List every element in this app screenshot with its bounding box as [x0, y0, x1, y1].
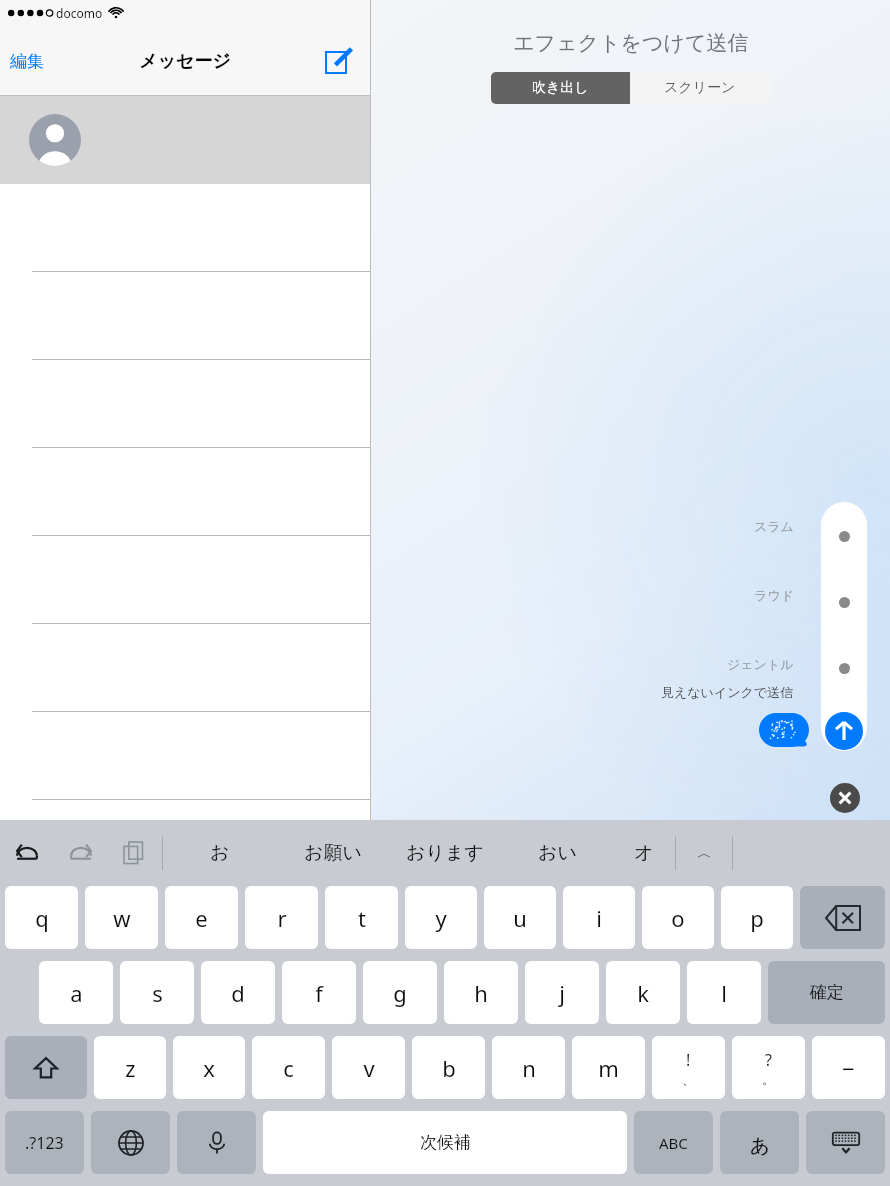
staticText: a — [70, 978, 83, 1008]
button[interactable]: Effect option — [829, 521, 859, 551]
button[interactable]: n — [492, 1036, 565, 1099]
button[interactable]: ? — [732, 1036, 805, 1099]
button[interactable]: j — [525, 961, 599, 1024]
button[interactable]: Expand — [676, 820, 732, 886]
staticText: .?123 — [25, 1132, 64, 1154]
button[interactable]: e — [165, 886, 238, 949]
button[interactable]: l — [687, 961, 761, 1024]
staticText: l — [721, 978, 727, 1008]
button[interactable]: Effect option — [829, 653, 859, 683]
button[interactable]: p — [721, 886, 793, 949]
staticText: y — [435, 903, 447, 933]
button[interactable]: z — [94, 1036, 166, 1099]
button[interactable]: おります — [389, 820, 501, 886]
button[interactable]: d — [201, 961, 275, 1024]
staticText: − — [842, 1053, 855, 1083]
button[interactable]: s — [120, 961, 194, 1024]
staticText: b — [442, 1053, 456, 1083]
button[interactable]: − — [812, 1036, 885, 1099]
staticText: 、 — [682, 1071, 695, 1087]
staticText: e — [195, 903, 208, 933]
button[interactable]: 編集 — [4, 45, 50, 78]
button[interactable]: u — [484, 886, 556, 949]
button[interactable]: g — [363, 961, 437, 1024]
staticText: 吹き出し — [532, 79, 589, 97]
staticText: ABC — [659, 1133, 688, 1153]
staticText: x — [203, 1053, 215, 1083]
button[interactable]: .?123 — [5, 1111, 84, 1174]
staticText: h — [474, 978, 488, 1008]
button[interactable]: k — [606, 961, 680, 1024]
staticText: 確定 — [810, 982, 844, 1003]
button[interactable]: お願い — [276, 820, 389, 886]
staticText: t — [358, 903, 366, 933]
button[interactable] — [0, 96, 370, 184]
staticText: i — [596, 903, 602, 933]
button[interactable]: b — [412, 1036, 485, 1099]
staticText: 見えないインクで送信 — [661, 684, 794, 700]
staticText: v — [363, 1053, 375, 1083]
button[interactable]: o — [642, 886, 714, 949]
button[interactable]: q — [5, 886, 78, 949]
button[interactable]: Paste — [108, 826, 162, 880]
button[interactable]: ぁ — [720, 1111, 799, 1174]
staticText: ラウド — [754, 587, 794, 603]
button[interactable] — [0, 536, 370, 624]
staticText: おい — [538, 841, 577, 865]
button[interactable]: Backspace — [800, 886, 885, 949]
staticText: docomo — [56, 5, 103, 21]
button[interactable]: a — [39, 961, 113, 1024]
button[interactable]: v — [332, 1036, 405, 1099]
button[interactable]: お — [163, 820, 276, 886]
button[interactable]: 次候補 — [263, 1111, 627, 1174]
staticText: スクリーン — [664, 79, 736, 97]
staticText: q — [35, 903, 49, 933]
button[interactable]: スクリーン — [630, 72, 770, 104]
button[interactable]: Undo — [0, 826, 54, 880]
button[interactable]: r — [245, 886, 318, 949]
staticText: メッセージ — [139, 50, 231, 73]
staticText: オ — [634, 841, 654, 865]
staticText: おります — [406, 841, 484, 865]
staticText: スラム — [754, 518, 794, 534]
button[interactable]: c — [252, 1036, 325, 1099]
staticText: z — [125, 1053, 136, 1083]
button[interactable]: Send — [825, 712, 863, 750]
staticText: d — [231, 978, 245, 1008]
button[interactable]: t — [325, 886, 398, 949]
button[interactable]: New message — [322, 45, 354, 77]
button[interactable]: ! — [652, 1036, 725, 1099]
button[interactable]: 確定 — [768, 961, 885, 1024]
button[interactable]: Redo — [54, 826, 108, 880]
button[interactable]: m — [572, 1036, 645, 1099]
staticText: お願い — [304, 841, 362, 865]
button[interactable]: Effect option — [829, 587, 859, 617]
staticText: n — [522, 1053, 536, 1083]
button[interactable]: Dictation — [177, 1111, 256, 1174]
button[interactable] — [0, 712, 370, 800]
staticText: r — [277, 903, 287, 933]
button[interactable]: Change keyboard — [91, 1111, 170, 1174]
staticText: g — [393, 978, 407, 1008]
button[interactable]: オ — [613, 820, 675, 886]
button[interactable]: おい — [501, 820, 613, 886]
button[interactable]: h — [444, 961, 518, 1024]
staticText: u — [513, 903, 527, 933]
button[interactable]: y — [405, 886, 477, 949]
button[interactable] — [0, 360, 370, 448]
button[interactable]: i — [563, 886, 635, 949]
button[interactable]: w — [85, 886, 158, 949]
button[interactable] — [0, 448, 370, 536]
staticText: 。 — [762, 1071, 775, 1087]
button[interactable] — [0, 184, 370, 272]
staticText: お — [210, 841, 230, 865]
button[interactable] — [0, 272, 370, 360]
button[interactable] — [0, 624, 370, 712]
button[interactable]: x — [173, 1036, 245, 1099]
button[interactable]: Close — [830, 783, 860, 813]
button[interactable]: Shift — [5, 1036, 87, 1099]
button[interactable]: ABC — [634, 1111, 713, 1174]
button[interactable]: f — [282, 961, 356, 1024]
button[interactable]: Hide keyboard — [806, 1111, 885, 1174]
button[interactable]: 吹き出し — [491, 72, 630, 104]
